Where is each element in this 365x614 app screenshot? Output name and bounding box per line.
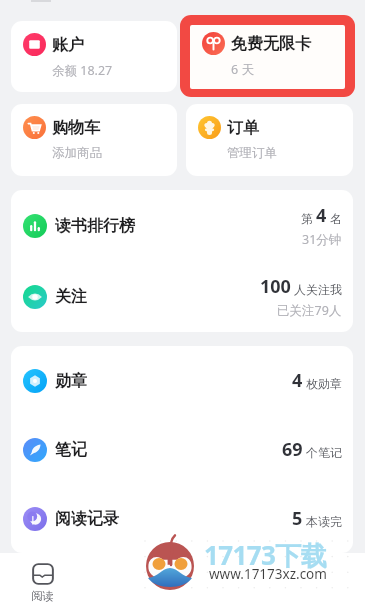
staticText: 本读完 [306, 514, 342, 529]
staticText: 购物车 [52, 118, 100, 138]
staticText: www.17173xz.com [209, 565, 327, 583]
staticText: 6 天 [231, 61, 254, 78]
staticText: 管理订单 [227, 145, 277, 161]
staticText: 勋章 [55, 371, 87, 391]
staticText: 关注 [55, 287, 87, 307]
staticText: 余额 18.27 [52, 62, 113, 79]
button[interactable]: 订单 [186, 104, 353, 176]
button[interactable]: 阅读 [0, 553, 85, 614]
staticText: 100 [260, 274, 291, 299]
button[interactable]: 勋章 [11, 346, 353, 415]
staticText: 笔记 [55, 440, 87, 460]
staticText: 账户 [52, 35, 84, 55]
button[interactable]: 读书排行榜 [11, 190, 353, 261]
staticText: 枚勋章 [306, 376, 342, 391]
staticText: 人关注我 [294, 282, 342, 297]
staticText: 4 [292, 368, 303, 393]
staticText: 个笔记 [306, 445, 342, 460]
staticText: 名 [330, 211, 342, 226]
button[interactable]: 购物车 [11, 104, 177, 176]
staticText: 第 [301, 211, 313, 226]
button[interactable]: 免费无限卡 [180, 15, 355, 97]
staticText: 69 [282, 437, 303, 462]
button[interactable]: 关注 [11, 261, 353, 332]
staticText: 17173下载 [204, 537, 327, 573]
staticText: 免费无限卡 [231, 34, 311, 54]
staticText: 阅读 [31, 589, 54, 603]
staticText: 5 [292, 506, 303, 531]
staticText: 已关注79人 [277, 302, 342, 319]
staticText: 阅读记录 [55, 509, 119, 529]
staticText: 31分钟 [302, 231, 342, 248]
button[interactable]: 笔记 [11, 415, 353, 484]
staticText: 4 [316, 203, 327, 228]
staticText: 读书排行榜 [55, 216, 135, 236]
button[interactable]: 账户 [11, 21, 177, 92]
staticText: 添加商品 [52, 145, 102, 161]
button[interactable]: 阅读记录 [11, 484, 353, 553]
staticText: 订单 [227, 118, 259, 138]
